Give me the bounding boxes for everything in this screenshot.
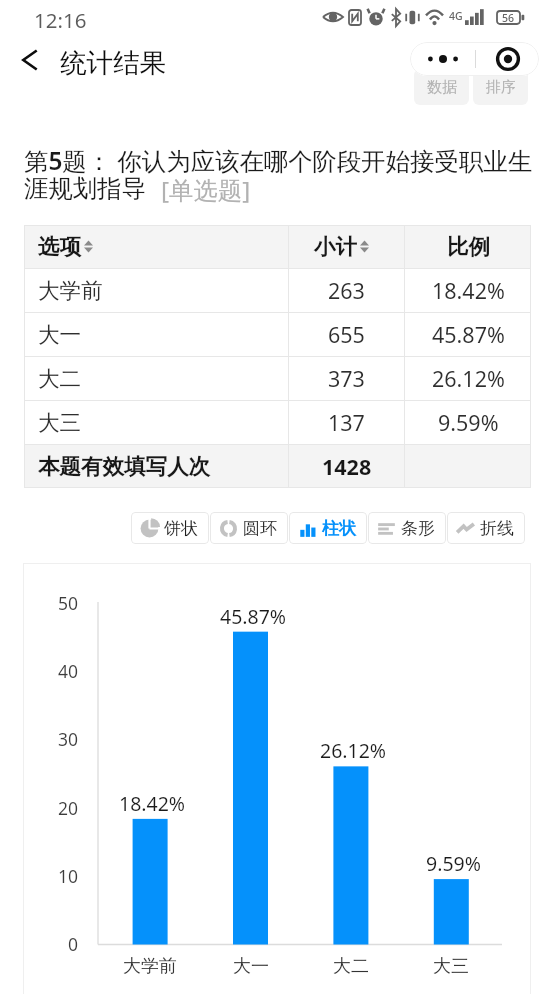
button[interactable]: 条形 xyxy=(368,512,446,544)
staticText: 20 xyxy=(58,796,79,820)
staticText: 大学前 xyxy=(38,277,103,304)
staticText: 大二 xyxy=(333,955,369,978)
staticText: 柱状 xyxy=(322,518,356,539)
staticText: 26.12% xyxy=(432,364,505,393)
button[interactable]: More options xyxy=(410,42,475,76)
staticText: 4G xyxy=(449,9,463,23)
staticText: 大三 xyxy=(38,409,81,436)
staticText: 圆环 xyxy=(243,518,277,539)
staticText: 12:16 xyxy=(34,6,87,34)
button[interactable]: 排序 xyxy=(473,69,528,105)
button[interactable]: 饼状 xyxy=(131,512,209,544)
button[interactable]: Back xyxy=(6,36,54,84)
staticText: 45.87% xyxy=(432,320,505,349)
staticText: 263 xyxy=(328,276,365,305)
staticText: 18.42% xyxy=(432,276,505,305)
staticText: 大学前 xyxy=(123,955,177,978)
staticText: 26.12% xyxy=(320,737,387,764)
staticText: 大一 xyxy=(38,321,81,348)
staticText: 137 xyxy=(328,408,365,437)
button[interactable]: 折线 xyxy=(447,512,525,544)
staticText: 0 xyxy=(68,932,79,956)
staticText: 56 xyxy=(502,11,515,25)
staticText: 数据 xyxy=(427,78,457,97)
staticText: 大三 xyxy=(433,955,469,978)
staticText: 涯规划指导 xyxy=(24,174,146,205)
staticText: 折线 xyxy=(480,518,514,539)
staticText: 30 xyxy=(58,727,79,751)
staticText: 饼状 xyxy=(164,518,198,539)
staticText: 50 xyxy=(58,591,79,615)
staticText: 统计结果 xyxy=(60,46,166,79)
staticText: 655 xyxy=(328,320,365,349)
button[interactable]: Recent apps xyxy=(476,42,539,76)
staticText: 18.42% xyxy=(119,790,186,817)
button[interactable]: 圆环 xyxy=(210,512,288,544)
staticText: 大一 xyxy=(233,955,269,978)
staticText: 10 xyxy=(58,864,79,888)
button[interactable]: 数据 xyxy=(414,69,469,105)
staticText: 小计 xyxy=(314,233,357,260)
staticText: 9.59% xyxy=(426,850,481,877)
button[interactable]: 柱状 xyxy=(289,512,367,544)
staticText: 373 xyxy=(328,364,365,393)
staticText: 本题有效填写人次 xyxy=(38,453,210,480)
staticText: 选项 xyxy=(38,233,81,260)
staticText: 45.87% xyxy=(220,603,287,630)
staticText: 9.59% xyxy=(438,408,499,437)
staticText: 40 xyxy=(58,659,79,683)
staticText: [单选题] xyxy=(161,173,251,206)
staticText: 第5题： 你认为应该在哪个阶段开始接受职业生 xyxy=(24,144,533,177)
staticText: 排序 xyxy=(486,78,516,97)
staticText: 比例 xyxy=(447,233,490,260)
staticText: 1428 xyxy=(322,452,372,481)
staticText: 大二 xyxy=(38,365,81,392)
staticText: 条形 xyxy=(401,518,435,539)
